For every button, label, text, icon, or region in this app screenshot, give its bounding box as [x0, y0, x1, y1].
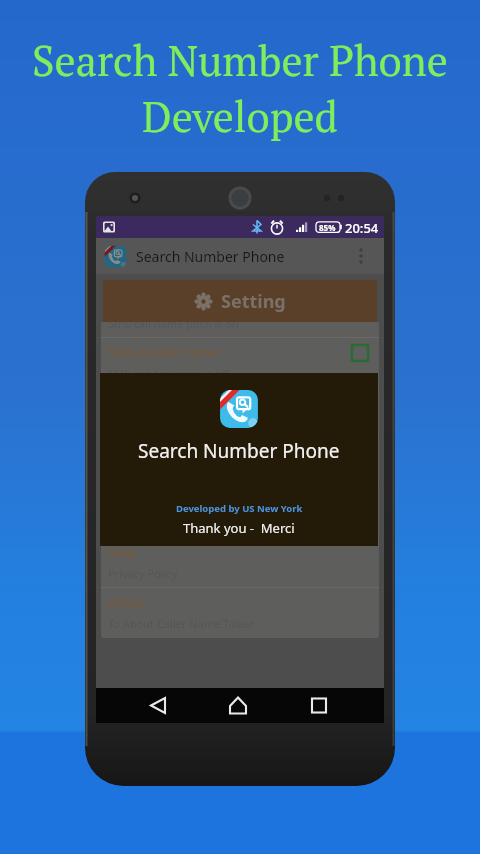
button[interactable]: Recents [297, 688, 341, 723]
button[interactable]: Repeat times [101, 487, 379, 537]
staticText: Setting [221, 289, 286, 314]
staticText: Help [108, 543, 137, 561]
staticText: 85% [319, 222, 336, 233]
staticText: Search Number Phone [32, 32, 448, 88]
staticText: Announce number [108, 443, 223, 461]
button[interactable]: Help [101, 537, 379, 587]
button[interactable]: SMS sender name [101, 337, 379, 387]
staticText: SMS sender name [108, 343, 218, 361]
staticText: 20:54 [345, 219, 379, 237]
staticText: Thank you - Merci [183, 519, 295, 537]
button[interactable]: Home [216, 688, 260, 723]
button[interactable]: More options [346, 241, 376, 271]
other: Navigation bar [96, 688, 384, 723]
staticText: Search Number Phone [136, 247, 285, 266]
button[interactable]: Contact name talker [101, 387, 379, 437]
staticText: Repeat 2 times [108, 516, 185, 531]
button[interactable]: Search Number Phone [96, 238, 384, 274]
staticText: Contact name talker is on [108, 416, 240, 431]
staticText: About [108, 593, 145, 611]
staticText: Contact name talker [108, 393, 232, 411]
staticText: Developed [142, 88, 338, 144]
button[interactable]: Back [136, 688, 180, 723]
button[interactable]: Setting [103, 280, 377, 322]
staticText: Repeat times [108, 493, 188, 511]
button[interactable]: About [101, 587, 379, 637]
staticText: SMS sender name is off [108, 366, 230, 381]
staticText: Developed by US New York [176, 502, 303, 515]
button[interactable]: Announce number [101, 437, 379, 487]
staticText: Search Number Phone [138, 438, 340, 464]
